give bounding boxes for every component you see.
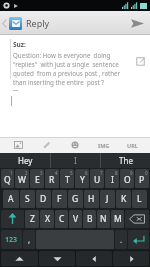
button[interactable]: H <box>84 190 99 208</box>
button[interactable]: Insert image <box>7 137 29 153</box>
staticText: J <box>106 193 109 205</box>
staticText: W <box>18 174 26 186</box>
staticText: 6 <box>85 170 88 176</box>
button[interactable]: K <box>116 190 131 208</box>
staticText: quoted from a previous post , rather <box>13 69 121 77</box>
staticText: F <box>57 193 62 205</box>
button[interactable]: Up <box>1 251 38 266</box>
staticText: 7 <box>100 170 103 176</box>
staticText: G <box>72 193 79 205</box>
staticText: Hey <box>18 155 33 166</box>
button[interactable]: Shift <box>1 210 24 228</box>
staticText: U <box>94 174 101 186</box>
staticText: K <box>121 193 127 205</box>
button[interactable]: S <box>20 190 35 208</box>
staticText: Y <box>80 174 85 186</box>
staticText: N <box>100 213 107 225</box>
button[interactable]: 4 <box>45 169 59 188</box>
button[interactable]: 0 <box>135 169 149 188</box>
button[interactable]: Backspace <box>125 210 149 228</box>
button[interactable]: Left <box>76 251 112 266</box>
staticText: E <box>35 174 40 186</box>
staticText: D <box>40 193 47 205</box>
button[interactable]: A <box>3 190 19 208</box>
button[interactable]: 7 <box>90 169 104 188</box>
staticText: I <box>111 174 114 186</box>
staticText: I <box>74 155 77 166</box>
staticText: H <box>88 193 95 205</box>
staticText: 1 <box>10 170 13 176</box>
button[interactable]: The <box>101 153 150 168</box>
button[interactable]: 3 <box>30 169 44 188</box>
button[interactable]: URL <box>121 137 143 153</box>
staticText: O <box>124 174 131 186</box>
staticText: A <box>8 193 14 205</box>
button[interactable]: Enter <box>128 230 149 249</box>
button[interactable]: J <box>100 190 115 208</box>
button[interactable]: C <box>55 210 68 228</box>
button[interactable]: Comma <box>23 230 35 249</box>
button[interactable]: IMG <box>93 137 115 153</box>
staticText: "replies" with just a single sentence <box>13 60 119 68</box>
button[interactable]: V <box>69 210 82 228</box>
button[interactable]: 1 <box>1 169 14 188</box>
staticText: Reply <box>26 17 50 29</box>
staticText: S <box>25 193 30 205</box>
button[interactable]: Attach <box>35 137 57 153</box>
staticText: , <box>28 234 31 245</box>
staticText: C <box>59 213 65 225</box>
button[interactable]: Hey <box>0 153 50 168</box>
staticText: Question: How is everyone doing <box>13 51 111 59</box>
button[interactable]: Z <box>25 210 39 228</box>
button[interactable]: 2 <box>15 169 29 188</box>
button[interactable]: Emoticon <box>64 137 86 153</box>
staticText: T <box>65 174 70 186</box>
staticText: The <box>119 155 133 166</box>
staticText: R <box>49 174 55 186</box>
staticText: 123 <box>5 235 18 245</box>
staticText: IMG <box>98 142 110 149</box>
button[interactable]: N <box>97 210 110 228</box>
button[interactable]: 8 <box>105 169 119 188</box>
button[interactable]: Reply <box>0 11 56 35</box>
staticText: V <box>73 213 79 225</box>
button[interactable]: G <box>68 190 83 208</box>
button[interactable]: Send <box>124 11 150 35</box>
button[interactable]: Period <box>115 230 127 249</box>
staticText: 3 <box>40 170 43 176</box>
staticText: 4 <box>55 170 58 176</box>
staticText: L <box>137 193 142 205</box>
button[interactable]: D <box>36 190 51 208</box>
staticText: Suz: <box>13 40 26 49</box>
staticText: 9 <box>130 170 133 176</box>
staticText: P <box>139 174 145 186</box>
button[interactable]: 9 <box>120 169 134 188</box>
staticText: Z <box>30 213 35 225</box>
staticText: X <box>45 213 50 225</box>
button[interactable]: B <box>83 210 96 228</box>
button[interactable]: M <box>111 210 124 228</box>
button[interactable]: L <box>132 190 147 208</box>
button[interactable]: X <box>40 210 54 228</box>
staticText: URL <box>127 142 138 149</box>
staticText: B <box>87 213 93 225</box>
staticText: 0 <box>145 170 148 176</box>
button[interactable]: 5 <box>60 169 74 188</box>
staticText: than inserting the entire post ? <box>13 78 104 86</box>
staticText: 2 <box>25 170 28 176</box>
button[interactable]: F <box>52 190 67 208</box>
staticText: Q <box>4 174 11 186</box>
button[interactable]: 6 <box>75 169 89 188</box>
staticText: . <box>120 234 123 245</box>
button[interactable]: Right <box>113 251 149 266</box>
staticText: 8 <box>115 170 118 176</box>
staticText: 5 <box>70 170 73 176</box>
button[interactable]: Symbols <box>1 230 22 249</box>
staticText: M <box>114 213 122 225</box>
button[interactable]: Down <box>39 251 75 266</box>
button[interactable]: I <box>51 153 100 168</box>
button[interactable]: Edit quote <box>136 57 145 66</box>
